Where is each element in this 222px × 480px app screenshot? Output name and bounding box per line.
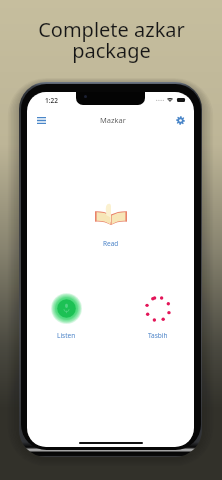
staticText: Listen xyxy=(57,331,76,340)
staticText: Mazkar xyxy=(100,115,126,125)
staticText: 1:22 xyxy=(45,96,58,105)
staticText: Complete azkar package xyxy=(38,16,185,64)
button[interactable]: Listen xyxy=(40,293,92,345)
staticText: Tasbih xyxy=(148,331,168,340)
staticText: Read xyxy=(103,239,119,248)
button[interactable]: Menu xyxy=(32,111,50,129)
button[interactable]: Settings xyxy=(171,111,189,129)
button[interactable]: Read xyxy=(85,200,137,244)
button[interactable]: Tasbih xyxy=(132,294,184,346)
